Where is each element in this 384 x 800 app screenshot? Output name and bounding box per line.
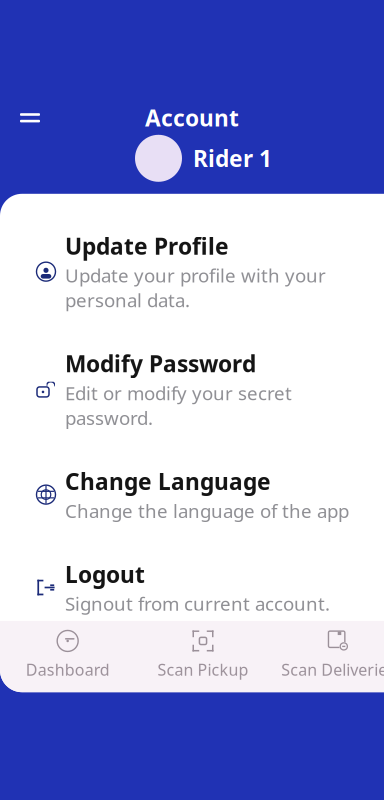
button[interactable]: Menu <box>12 105 48 131</box>
button[interactable]: Update Profile <box>0 226 384 317</box>
button[interactable]: Modify Password <box>0 343 384 435</box>
button[interactable]: Scan Deliveries <box>271 621 384 692</box>
button[interactable]: Change Language <box>0 461 384 528</box>
staticText: Rider 1 <box>193 143 272 173</box>
staticText: Account <box>145 103 239 133</box>
staticText: Update your profile with your personal d… <box>65 263 326 312</box>
staticText: Dashboard <box>26 659 110 680</box>
staticText: Change Language <box>65 466 271 496</box>
staticText: Scan Pickup <box>157 659 248 680</box>
staticText: Modify Password <box>65 348 256 379</box>
staticText: Edit or modify your secret password. <box>65 381 292 430</box>
button[interactable]: Scan Pickup <box>135 621 271 692</box>
staticText: Change the language of the app <box>65 498 349 523</box>
staticText: Scan Deliveries <box>281 659 384 680</box>
staticText: Logout <box>65 559 145 589</box>
staticText: Signout from current account. <box>65 591 330 616</box>
button[interactable]: Logout <box>0 554 384 621</box>
staticText: Update Profile <box>65 231 229 261</box>
button[interactable]: Dashboard <box>0 621 135 692</box>
